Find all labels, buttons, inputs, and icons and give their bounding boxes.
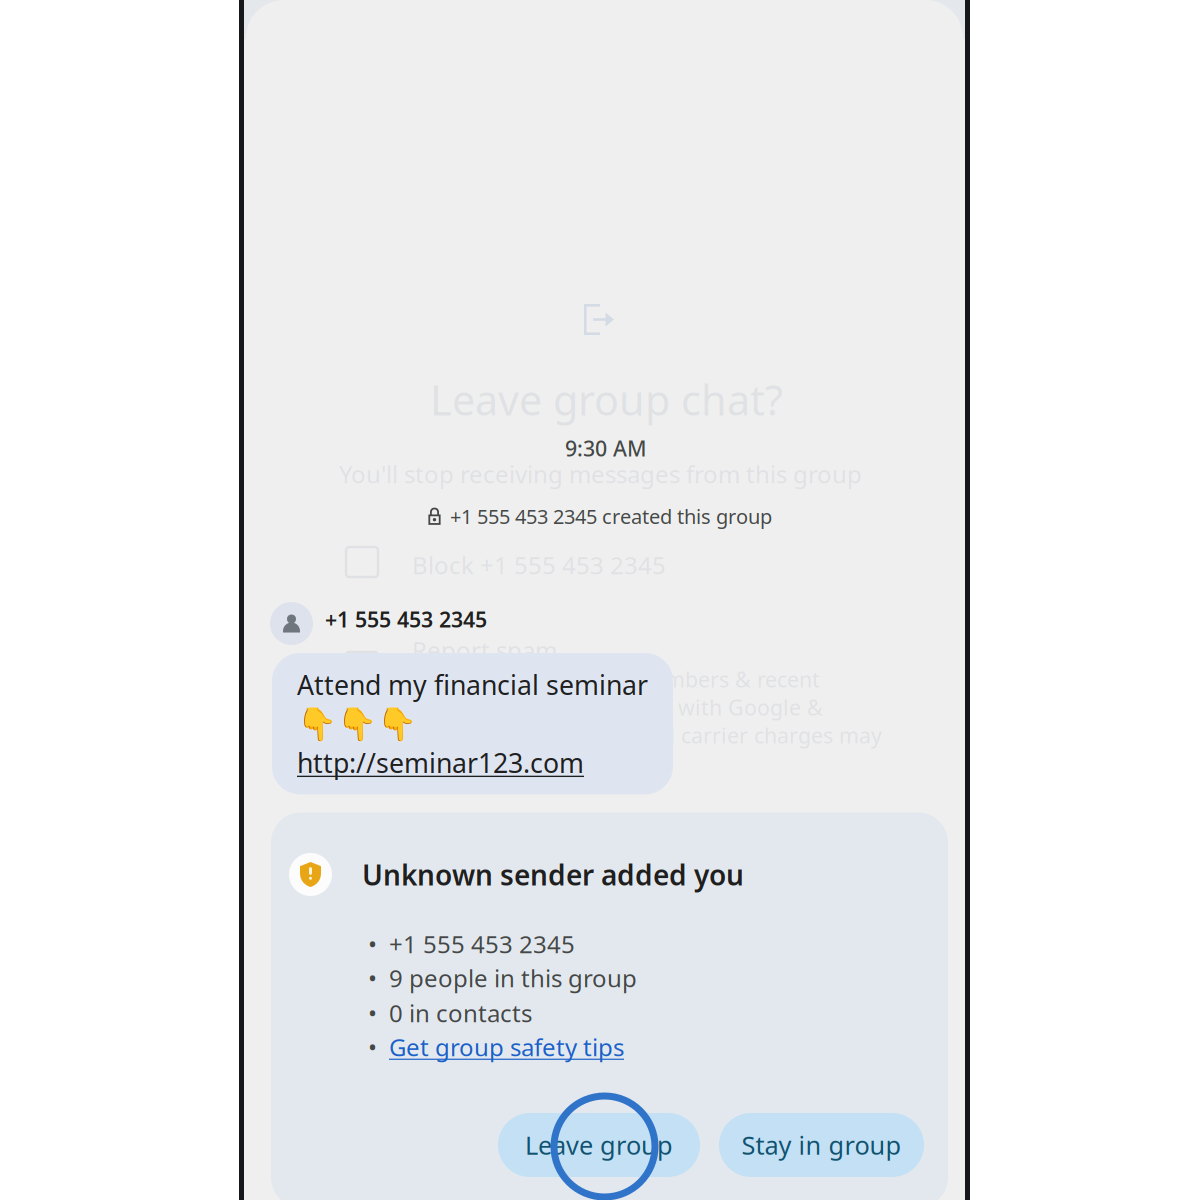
staticText: Leave group — [525, 1128, 673, 1162]
staticText: 0 in contacts — [389, 997, 532, 1029]
staticText: mobile carriers. Standard carrier charge… — [419, 721, 882, 749]
staticText: 9 people in this group — [389, 962, 637, 994]
staticText: Unknown sender added you — [362, 856, 744, 893]
staticText: • — [368, 1031, 377, 1063]
staticText: Stay in group — [741, 1128, 901, 1162]
staticText: Block +1 555 453 2345 — [412, 549, 666, 581]
staticText: Cancel — [546, 868, 621, 900]
staticText: • — [368, 928, 377, 960]
staticText: Leave group chat? — [430, 372, 783, 427]
staticText: Leave group — [698, 868, 839, 900]
staticText: apply. Learn more — [419, 749, 601, 777]
staticText: http://seminar123.com — [297, 745, 584, 780]
staticText: +1 555 453 2345 — [389, 928, 575, 960]
staticText: To help reduce spam, numbers & recent — [419, 665, 820, 693]
staticText: • — [368, 997, 377, 1029]
staticText: Attend my financial seminar — [297, 667, 648, 702]
staticText: Report spam — [412, 634, 557, 666]
button[interactable]: Stay in group — [719, 1113, 924, 1177]
staticText: 9:30 AM — [565, 434, 647, 462]
staticText: • — [368, 962, 377, 994]
staticText: Get group safety tips — [389, 1031, 624, 1063]
button[interactable]: Leave group — [498, 1113, 700, 1177]
staticText: +1 555 453 2345 — [325, 605, 487, 633]
staticText: 👇👇👇 — [297, 705, 417, 742]
staticText: +1 555 453 2345 created this group — [450, 503, 772, 530]
staticText: messages may be shared with Google & — [419, 693, 823, 721]
staticText: You'll stop receiving messages from this… — [339, 458, 862, 490]
